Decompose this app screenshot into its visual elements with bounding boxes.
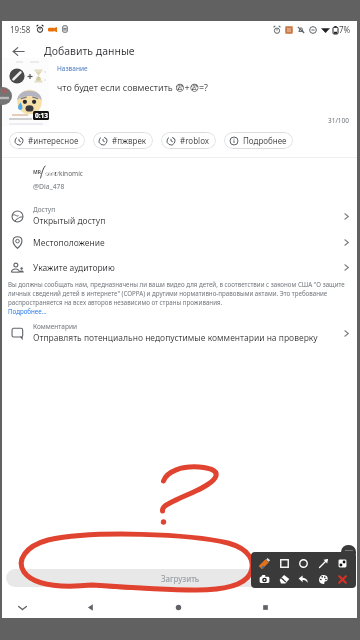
staticText: 7%	[339, 24, 351, 35]
button[interactable]: Закрыть	[333, 571, 352, 587]
staticText: Название	[57, 64, 88, 73]
button[interactable]: Камера	[255, 571, 274, 587]
staticText: #интересное	[28, 135, 79, 146]
button[interactable]: Главный экран	[166, 596, 190, 618]
button[interactable]: Прямоугольник	[275, 555, 294, 571]
staticText: Подробнее	[243, 135, 287, 146]
button[interactable]: Круг	[294, 555, 313, 571]
button[interactable]: Доступ	[2, 203, 357, 229]
staticText: Укажите аудиторию	[33, 262, 115, 274]
button[interactable]: Подробнее	[224, 132, 293, 149]
button[interactable]: Комментарии	[2, 320, 357, 346]
staticText: Загрузить	[161, 573, 200, 584]
staticText: MR	[33, 169, 41, 176]
button[interactable]: #пжврек	[93, 132, 153, 149]
staticText: Вы должны сообщать нам, предназначены ли…	[8, 280, 355, 307]
button[interactable]: Укажите аудиторию	[2, 256, 357, 279]
button[interactable]: Отменить	[294, 571, 313, 587]
staticText: Местоположение	[33, 237, 105, 249]
button[interactable]: #интересное	[9, 132, 85, 149]
button[interactable]: Местоположение	[2, 231, 357, 254]
button[interactable]: #roblox	[161, 132, 216, 149]
staticText: Отправлять потенциально недопустимые ком…	[33, 332, 318, 344]
staticText: #roblox	[180, 135, 210, 146]
button[interactable]: Подробнее...	[8, 307, 47, 315]
staticText: Доступ	[33, 205, 56, 214]
button[interactable]: Назад	[2, 36, 34, 66]
staticText: 0:13	[35, 111, 48, 120]
button[interactable]: Палитра	[314, 571, 333, 587]
staticText: Комментарии	[33, 322, 78, 331]
button[interactable]: Ластик	[275, 571, 294, 587]
staticText: @Dia_478	[33, 182, 65, 191]
staticText: Открытый доступ	[33, 215, 106, 227]
button[interactable]: Обзор приложений	[253, 596, 277, 618]
button[interactable]: Маркер	[255, 555, 274, 571]
staticText: что будет если совместить 😨+😨=?	[57, 81, 209, 93]
button[interactable]: Свернуть панель	[341, 545, 356, 554]
staticText: #пжврек	[112, 135, 147, 146]
button[interactable]: Свернуть клавиатуру	[10, 596, 34, 618]
button[interactable]: Назад	[78, 596, 102, 618]
staticText: 𝒟𝒪𝑼kinomic	[45, 169, 83, 178]
button[interactable]: Стрелка	[314, 555, 333, 571]
staticText: Добавить данные	[44, 44, 135, 58]
staticText: 19:58	[10, 24, 31, 35]
button[interactable]: Мозаика	[333, 555, 352, 571]
button[interactable]: Загрузить	[6, 569, 355, 587]
staticText: 31/100	[2, 116, 349, 125]
